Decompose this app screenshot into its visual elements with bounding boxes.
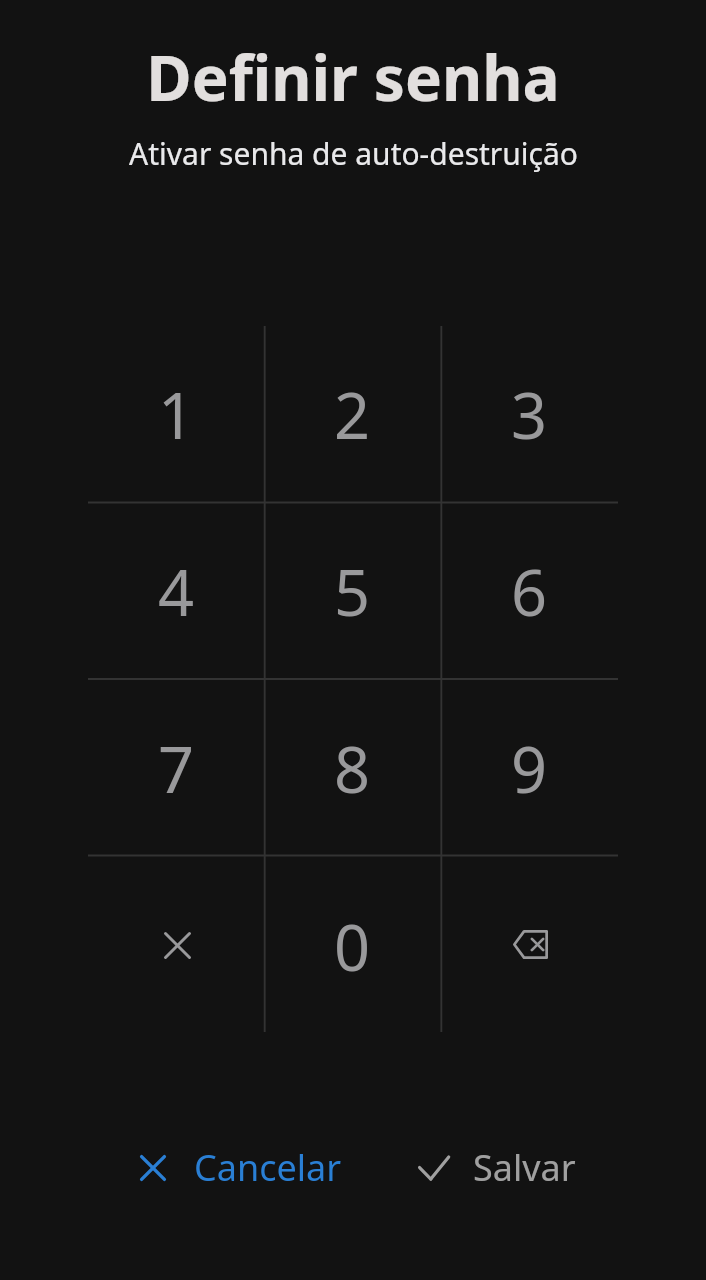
staticText: Salvar bbox=[473, 1143, 576, 1192]
button[interactable]: 1 bbox=[88, 324, 264, 501]
button[interactable]: 3 bbox=[441, 324, 618, 501]
button[interactable]: Backspace bbox=[441, 856, 618, 1034]
button[interactable]: 0 bbox=[264, 856, 441, 1034]
button[interactable]: 9 bbox=[441, 678, 618, 856]
button[interactable]: Salvar bbox=[410, 1133, 582, 1202]
button[interactable]: 6 bbox=[441, 501, 618, 678]
button[interactable]: 7 bbox=[88, 678, 264, 856]
button[interactable]: 4 bbox=[88, 501, 264, 678]
button[interactable]: 5 bbox=[264, 501, 441, 678]
staticText: Ativar senha de auto-destruição bbox=[129, 133, 578, 174]
staticText: Cancelar bbox=[194, 1143, 342, 1192]
staticText: 7 bbox=[158, 726, 195, 812]
staticText: 3 bbox=[511, 372, 548, 458]
button[interactable]: 2 bbox=[264, 324, 441, 501]
staticText: 1 bbox=[158, 372, 195, 458]
other: Backspace bbox=[513, 930, 548, 959]
button[interactable]: 8 bbox=[264, 678, 441, 856]
other: Clear bbox=[164, 932, 191, 959]
staticText: Definir senha bbox=[146, 35, 560, 119]
button[interactable]: Cancelar bbox=[134, 1133, 348, 1202]
staticText: 6 bbox=[511, 549, 548, 635]
staticText: 4 bbox=[158, 549, 195, 635]
staticText: 5 bbox=[334, 549, 371, 635]
staticText: 8 bbox=[334, 726, 371, 812]
staticText: 9 bbox=[511, 726, 548, 812]
staticText: 2 bbox=[334, 372, 371, 458]
button[interactable]: Clear bbox=[88, 856, 264, 1034]
staticText: 0 bbox=[334, 904, 371, 990]
